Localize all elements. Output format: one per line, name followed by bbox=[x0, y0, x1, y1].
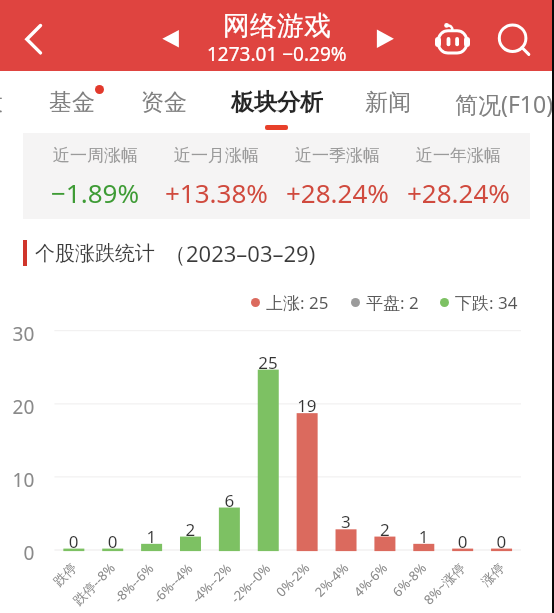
button[interactable]: Back bbox=[10, 14, 54, 58]
button[interactable]: 新闻 bbox=[365, 74, 411, 131]
staticText: 近一年涨幅 bbox=[416, 145, 501, 166]
button[interactable]: 下跌: 34 bbox=[440, 288, 518, 317]
staticText: +13.38% bbox=[165, 175, 268, 210]
staticText: 近一月涨幅 bbox=[174, 145, 259, 166]
button[interactable]: 简况(F10) bbox=[455, 74, 554, 133]
button[interactable]: Previous sector bbox=[147, 16, 187, 56]
button[interactable]: 上涨: 25 bbox=[251, 288, 329, 317]
staticText: 近一季涨幅 bbox=[295, 145, 380, 166]
staticText: 股 bbox=[0, 88, 3, 117]
staticText: 网络游戏 bbox=[223, 9, 331, 43]
staticText: −1.89% bbox=[51, 175, 140, 210]
button[interactable]: 股 bbox=[0, 74, 3, 131]
button[interactable]: 板块分析 bbox=[231, 74, 323, 131]
staticText: （2023–03–29) bbox=[164, 238, 316, 268]
staticText: 下跌: 34 bbox=[455, 291, 518, 314]
staticText: +28.24% bbox=[286, 175, 389, 210]
button[interactable]: Search bbox=[492, 14, 536, 58]
button[interactable]: 个股涨跌统计 bbox=[23, 238, 316, 268]
staticText: 上涨: 25 bbox=[266, 291, 329, 314]
staticText: 近一周涨幅 bbox=[53, 145, 138, 166]
staticText: 基金 bbox=[49, 88, 95, 117]
button[interactable]: AI assistant bbox=[430, 14, 474, 58]
staticText: 平盘: 2 bbox=[366, 291, 419, 314]
staticText: 1273.01 −0.29% bbox=[207, 41, 347, 67]
staticText: 资金 bbox=[141, 88, 187, 117]
button[interactable]: Next sector bbox=[363, 16, 403, 56]
button[interactable]: 资金 bbox=[141, 74, 187, 131]
staticText: 简况(F10) bbox=[455, 88, 554, 119]
staticText: 个股涨跌统计 bbox=[35, 241, 155, 266]
button[interactable]: 平盘: 2 bbox=[351, 288, 419, 317]
staticText: +28.24% bbox=[407, 175, 510, 210]
staticText: 新闻 bbox=[365, 88, 411, 117]
staticText: 板块分析 bbox=[231, 88, 323, 117]
button[interactable]: 基金 bbox=[49, 74, 95, 131]
